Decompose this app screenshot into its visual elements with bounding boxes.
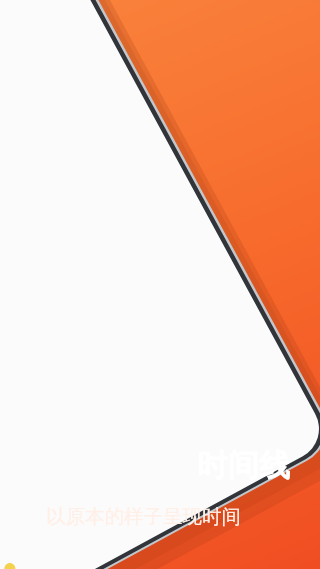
button[interactable]: 时间线，以原本的样子呈现时间 [0, 0, 320, 569]
